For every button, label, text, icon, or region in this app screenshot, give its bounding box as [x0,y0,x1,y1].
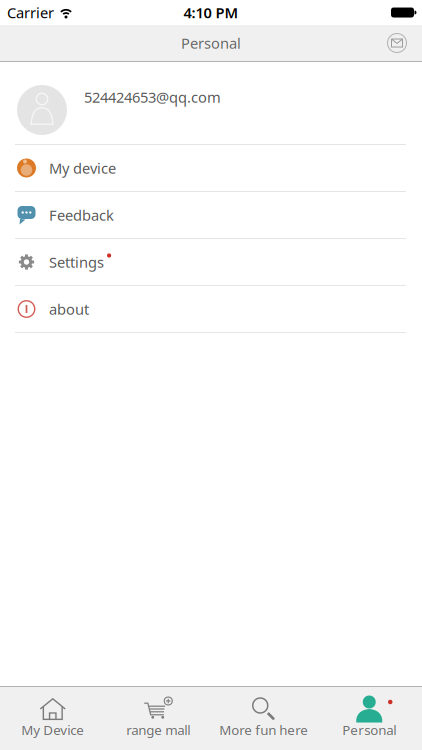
button[interactable]: range mall [105,687,211,750]
button[interactable]: Feedback [0,192,422,238]
staticText: Personal [181,33,241,53]
button[interactable]: Messages [384,30,422,56]
staticText: Settings [49,252,104,272]
staticText: Personal [342,721,396,739]
button[interactable]: More fun here [211,687,316,750]
button[interactable]: 524424653@qq.com [0,62,422,144]
staticText: Feedback [49,205,114,225]
button[interactable]: Settings [0,239,422,285]
staticText: My device [49,158,116,178]
staticText: 4:10 PM [183,3,238,22]
staticText: My Device [21,721,84,739]
staticText: Carrier [7,3,54,22]
button[interactable]: My Device [0,687,105,750]
button[interactable]: My device [0,145,422,191]
staticText: about [49,299,89,319]
staticText: 524424653@qq.com [84,87,221,107]
button[interactable]: Personal [316,687,422,750]
button[interactable]: about [0,286,422,332]
staticText: More fun here [219,721,308,739]
staticText: range mall [126,721,190,739]
